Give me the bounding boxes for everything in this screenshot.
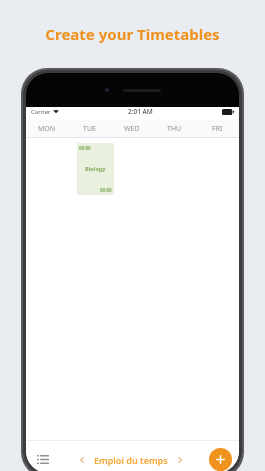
button[interactable]: MON <box>26 120 68 137</box>
button[interactable]: Previous week <box>75 453 89 467</box>
button[interactable]: Add event <box>209 448 232 471</box>
staticText: WED <box>124 124 140 134</box>
button[interactable]: FRI <box>196 120 239 137</box>
button[interactable]: TUE <box>68 120 110 137</box>
button[interactable]: THU <box>153 120 196 137</box>
staticText: Create your Timetables <box>45 24 220 44</box>
button[interactable]: List view <box>33 450 53 470</box>
button[interactable]: 08:00 <box>77 143 114 195</box>
staticText: 2:01 AM <box>128 107 153 116</box>
button[interactable]: Emploi du temps <box>94 454 168 466</box>
staticText: 08:00 <box>79 145 91 151</box>
staticText: TUE <box>83 124 96 134</box>
staticText: THU <box>167 124 182 134</box>
staticText: FRI <box>212 124 223 134</box>
button[interactable]: Next week <box>173 453 187 467</box>
staticText: Carrier <box>31 108 51 116</box>
button[interactable]: WED <box>110 120 153 137</box>
staticText: 09:00 <box>100 187 112 193</box>
staticText: MON <box>38 124 56 134</box>
staticText: Emploi du temps <box>94 454 168 466</box>
staticText: Biology <box>85 165 106 172</box>
